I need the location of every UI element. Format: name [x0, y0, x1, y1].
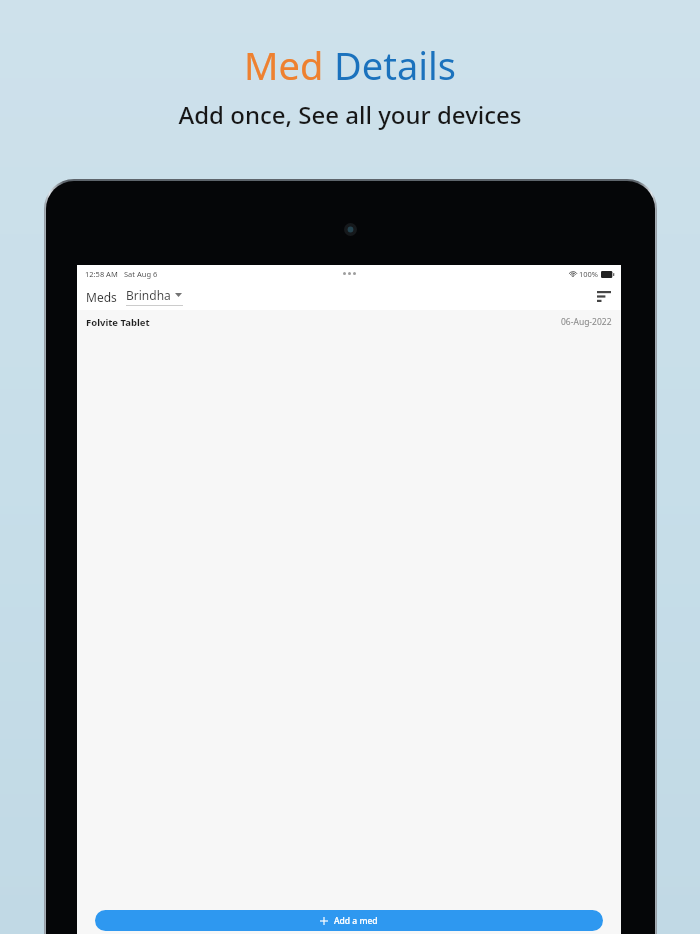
- button[interactable]: Add a med: [95, 910, 603, 931]
- staticText: Med: [244, 39, 334, 91]
- staticText: Add a med: [334, 915, 378, 927]
- staticText: Brindha: [126, 287, 171, 303]
- staticText: 06-Aug-2022: [561, 316, 612, 328]
- staticText: 12:58 AM: [85, 269, 118, 279]
- staticText: Folvite Tablet: [86, 316, 150, 329]
- staticText: Add once, See all your devices: [178, 98, 522, 131]
- staticText: Meds: [86, 289, 117, 305]
- button[interactable]: Brindha: [126, 287, 183, 306]
- button[interactable]: Sort: [592, 284, 616, 308]
- staticText: Details: [334, 39, 457, 91]
- staticText: 100%: [579, 269, 599, 279]
- button[interactable]: Folvite Tablet: [77, 310, 621, 334]
- staticText: Sat Aug 6: [124, 269, 158, 279]
